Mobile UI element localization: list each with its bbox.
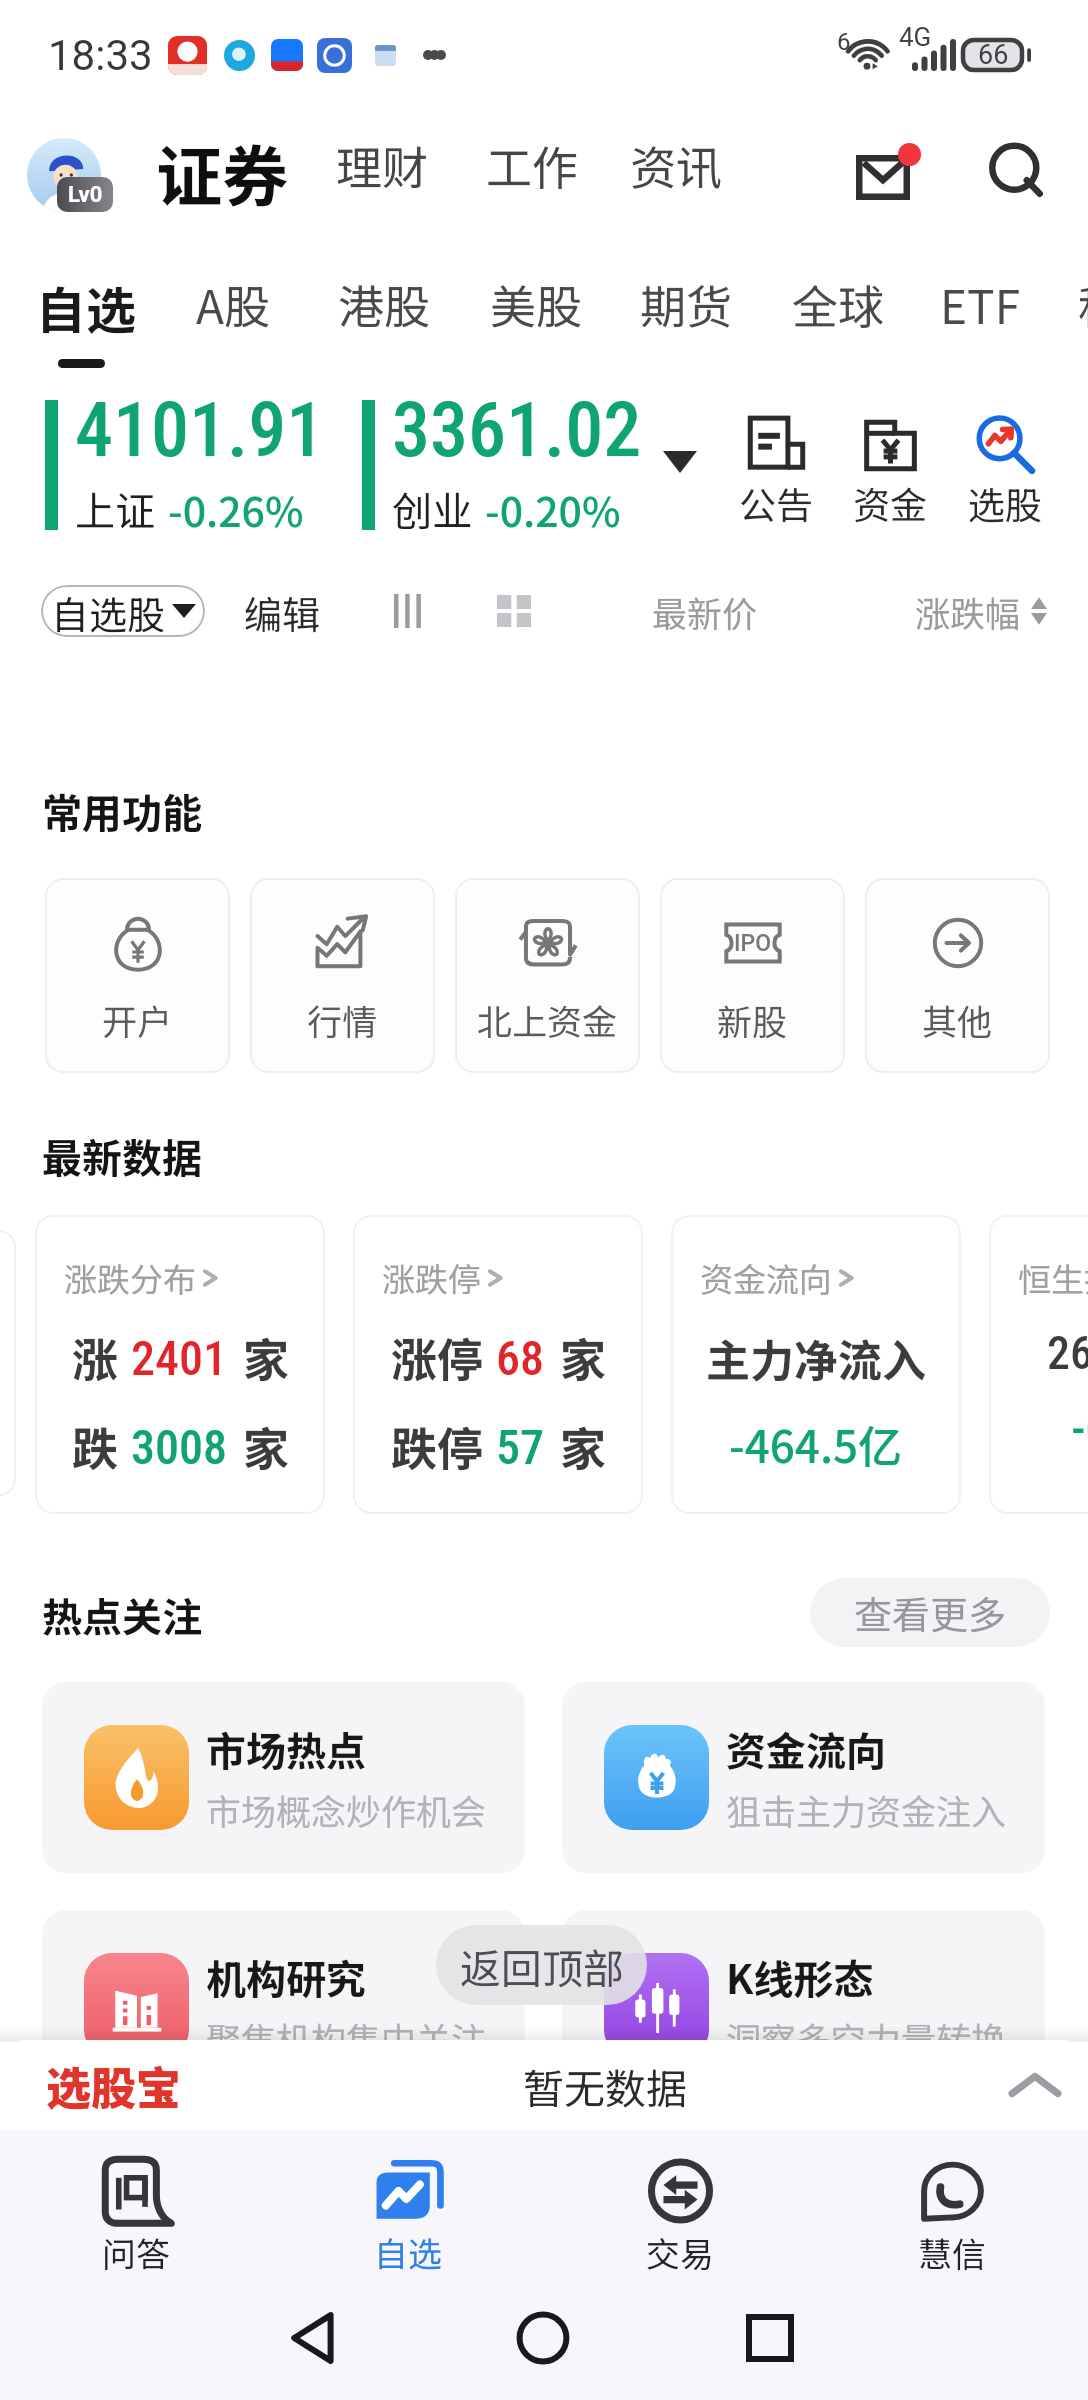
button[interactable]: Back [275, 2298, 355, 2378]
staticText: K线形态 [726, 1948, 874, 2006]
button[interactable]: 慧信 [816, 2158, 1088, 2298]
button[interactable]: More indices [655, 440, 705, 484]
staticText: 最新价 [652, 586, 758, 637]
button[interactable]: 开户 [45, 878, 230, 1073]
staticText: 洞察多空力量转换 [726, 2012, 1007, 2063]
button[interactable]: 理财 [336, 132, 428, 199]
button[interactable]: Home [503, 2298, 583, 2378]
staticText: -0.26% [168, 479, 304, 538]
staticText: 机构研究 [206, 1948, 366, 2006]
staticText: 狙击主力资金注入 [726, 1784, 1007, 1835]
button[interactable]: 涨跌幅 [915, 585, 1047, 637]
staticText: 暂无数据 [523, 2056, 687, 2115]
staticText: A股 [196, 271, 270, 338]
button[interactable]: 创业 [392, 479, 621, 538]
button[interactable]: 4101.91 [75, 385, 325, 474]
staticText: 家 [560, 1413, 606, 1480]
staticText: 工作 [486, 132, 578, 199]
staticText: 主力净流入 [706, 1326, 926, 1390]
button[interactable]: 其他 [865, 878, 1050, 1073]
button[interactable]: 上证 [75, 479, 304, 538]
staticText: 2401 [131, 1330, 227, 1386]
staticText: IPO [734, 930, 772, 957]
staticText: 期货 [640, 271, 732, 338]
button[interactable]: 北上资金 [455, 878, 640, 1073]
staticText: 交易 [646, 2228, 714, 2277]
staticText: 北上资金 [477, 994, 618, 1045]
staticText: 跌 [72, 1413, 118, 1480]
staticText: 市场概念炒作机会 [206, 1784, 487, 1835]
staticText: ETF [940, 271, 1021, 338]
staticText: 查看更多 [854, 1585, 1007, 1640]
button[interactable]: Profile [27, 138, 101, 212]
button[interactable]: 期货 [624, 263, 748, 346]
button[interactable]: 证券 [156, 124, 288, 220]
button[interactable]: 3361.02 [392, 385, 642, 474]
button[interactable]: 返回顶部 [436, 1925, 647, 2005]
button[interactable]: 涨跌分布 [35, 1215, 325, 1514]
staticText: 选股 [968, 476, 1042, 530]
button[interactable]: 公告 [726, 415, 826, 530]
button[interactable]: 市场热点 [42, 1682, 525, 1873]
button[interactable]: Grid layout [484, 585, 544, 637]
button[interactable]: 资金流向 [671, 1215, 961, 1514]
staticText: 最新数据 [42, 1127, 202, 1185]
button[interactable]: 美股 [474, 263, 598, 346]
staticText: 6 [837, 28, 851, 56]
staticText: 自选 [36, 271, 136, 343]
button[interactable]: 机构研究 [42, 1910, 525, 2101]
button[interactable]: 全球 [776, 263, 900, 346]
button[interactable]: 科 [1062, 263, 1088, 346]
button[interactable]: 自选 [272, 2158, 544, 2298]
button[interactable]: 查看更多 [810, 1578, 1050, 1647]
button[interactable]: 资讯 [630, 132, 722, 199]
staticText: 家 [560, 1324, 606, 1391]
staticText: 资金流向 [726, 1720, 886, 1778]
button[interactable]: 涨跌停 [353, 1215, 643, 1514]
staticText: 3361.02 [392, 385, 642, 474]
button[interactable]: 自选 [20, 263, 152, 351]
staticText: 涨停 [391, 1324, 483, 1391]
staticText: 行情 [307, 994, 378, 1045]
button[interactable]: K线形态 [562, 1910, 1045, 2101]
button[interactable]: 交易 [544, 2158, 816, 2298]
button[interactable]: 选股 [955, 415, 1055, 530]
staticText: -464.5亿 [729, 1412, 903, 1476]
button[interactable]: 资金流向 [562, 1682, 1045, 1873]
staticText: 恒生指数 [1018, 1254, 1088, 1302]
button[interactable]: List layout [380, 585, 436, 637]
staticText: 68 [496, 1330, 544, 1386]
button[interactable]: Recents [730, 2298, 810, 2378]
staticText: 常用功能 [42, 782, 202, 840]
staticText: 资讯 [630, 132, 722, 199]
staticText: 资金 [853, 476, 927, 530]
staticText: 科 [1078, 271, 1088, 338]
staticText: -0.20% [485, 479, 621, 538]
button[interactable]: ETF [924, 263, 1037, 346]
button[interactable]: 恒生指数 [989, 1215, 1088, 1514]
staticText: 港股 [338, 271, 430, 338]
staticText: 其他 [922, 994, 993, 1045]
staticText: 聚焦机构集中关注 [206, 2012, 487, 2063]
staticText: -0.38% [989, 1402, 1088, 1456]
button[interactable]: 最新价 [650, 585, 760, 637]
button[interactable]: 行情 [250, 878, 435, 1073]
staticText: 4G [899, 22, 932, 52]
button[interactable]: Search [972, 126, 1068, 222]
button[interactable]: Expand panel [1004, 2054, 1066, 2116]
button[interactable]: 问答 [0, 2158, 272, 2298]
staticText: 涨跌幅 [915, 586, 1021, 637]
staticText: 开户 [102, 994, 173, 1045]
staticText: 自选 [374, 2228, 442, 2277]
button[interactable]: 编辑 [237, 585, 327, 637]
button[interactable]: 工作 [486, 132, 578, 199]
button[interactable]: 资金 [840, 415, 940, 530]
staticText: 全球 [792, 271, 884, 338]
button[interactable]: 自选股 [41, 585, 205, 637]
staticText: 上证 [75, 480, 155, 538]
button[interactable]: 港股 [322, 263, 446, 346]
button[interactable]: IPO [660, 878, 845, 1073]
button[interactable]: Messages [835, 129, 931, 225]
button[interactable]: A股 [180, 263, 286, 346]
staticText: 18:33 [48, 31, 153, 80]
